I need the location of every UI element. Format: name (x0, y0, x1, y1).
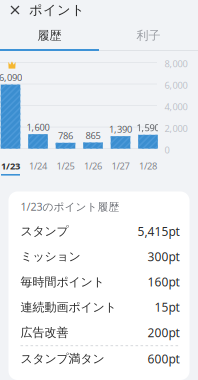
staticText: 広告改善 (20, 325, 68, 340)
staticText: 300pt (147, 249, 179, 264)
staticText: 連続動画ポイント (20, 300, 116, 314)
staticText: 600pt (147, 351, 179, 367)
staticText: 履歴 (37, 28, 61, 43)
staticText: 8,000 (164, 57, 187, 70)
staticText: 1,590 (136, 121, 159, 134)
staticText: 4,000 (164, 100, 187, 113)
staticText: 1,390 (109, 123, 132, 135)
staticText: 865 (85, 129, 100, 142)
staticText: ポイント (29, 2, 85, 18)
button[interactable]: 閉じる (0, 0, 29, 20)
staticText: 5,415pt (137, 223, 179, 239)
staticText: スタンプ満タン (20, 351, 104, 366)
button[interactable]: 連続動画ポイント (8, 295, 189, 320)
staticText: 毎時間ポイント (20, 274, 104, 289)
button[interactable]: スタンプ満タン (8, 346, 189, 371)
staticText: 1/23 (1, 160, 20, 172)
staticText: 1/23のポイント履歴 (20, 199, 119, 214)
staticText: 1/28 (139, 160, 157, 172)
staticText: 利子 (136, 28, 160, 43)
staticText: 1/27 (111, 160, 129, 172)
staticText: 6,000 (164, 79, 187, 91)
button[interactable]: 履歴 (0, 20, 99, 51)
staticText: 1/24 (29, 160, 47, 172)
button[interactable]: スタンプ (8, 219, 189, 244)
button[interactable]: 毎時間ポイント (8, 269, 189, 295)
staticText: 6,090 (0, 71, 22, 84)
button[interactable]: 利子 (99, 20, 198, 51)
staticText: 1,600 (26, 121, 49, 133)
staticText: 786 (58, 129, 73, 142)
staticText: 160pt (147, 274, 179, 290)
staticText: ミッション (20, 249, 80, 264)
staticText: 1/26 (84, 160, 102, 172)
staticText: 1/25 (56, 160, 74, 172)
staticText: 15pt (154, 299, 179, 315)
staticText: 0 (164, 144, 169, 156)
button[interactable]: ミッション (8, 244, 189, 269)
staticText: スタンプ (20, 224, 68, 239)
button[interactable]: 広告改善 (8, 320, 189, 345)
staticText: 2,000 (164, 122, 187, 134)
staticText: 200pt (147, 324, 179, 340)
